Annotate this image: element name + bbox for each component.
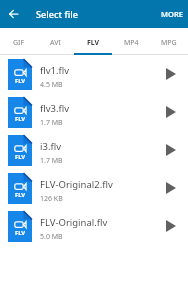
staticText: FLV	[15, 115, 26, 123]
button[interactable]: GIF	[0, 28, 37, 55]
button[interactable]: MPG	[150, 28, 188, 55]
button[interactable]: MP4	[112, 28, 150, 55]
staticText: 1.7 MB	[40, 118, 63, 128]
staticText: flv3.flv	[40, 102, 70, 115]
button[interactable]: AVI	[37, 28, 74, 55]
staticText: FLV	[15, 229, 26, 237]
button[interactable]: Play	[157, 131, 185, 169]
staticText: i3.flv	[40, 140, 61, 153]
button[interactable]: Play	[157, 55, 185, 93]
staticText: FLV	[15, 191, 26, 199]
staticText: GIF	[13, 38, 25, 48]
staticText: AVI	[50, 38, 61, 48]
button[interactable]: FLV	[0, 131, 188, 169]
staticText: FLV-Original2.flv	[40, 178, 113, 191]
staticText: flv1.flv	[40, 64, 70, 77]
button[interactable]: FLV	[0, 55, 188, 93]
staticText: 4.5 MB	[40, 80, 63, 90]
button[interactable]: FLV	[0, 93, 188, 131]
button[interactable]: Play	[157, 207, 185, 245]
button[interactable]: Play	[157, 93, 185, 131]
button[interactable]: Play	[157, 169, 185, 207]
staticText: 1.7 MB	[40, 156, 63, 166]
button[interactable]: FLV	[0, 207, 188, 245]
staticText: 126 KB	[40, 194, 63, 204]
button[interactable]: FLV	[0, 169, 188, 207]
staticText: MORE	[161, 9, 183, 19]
staticText: FLV-Original.flv	[40, 216, 108, 229]
staticText: MPG	[161, 38, 177, 48]
staticText: FLV	[15, 153, 26, 161]
button[interactable]: FLV	[74, 28, 112, 55]
staticText: MP4	[124, 38, 139, 48]
staticText: FLV	[87, 38, 100, 48]
button[interactable]: Back	[4, 0, 22, 28]
staticText: 5.0 MB	[40, 232, 63, 242]
staticText: Select file	[36, 8, 79, 21]
button[interactable]: MORE	[154, 0, 188, 28]
staticText: FLV	[15, 77, 26, 85]
